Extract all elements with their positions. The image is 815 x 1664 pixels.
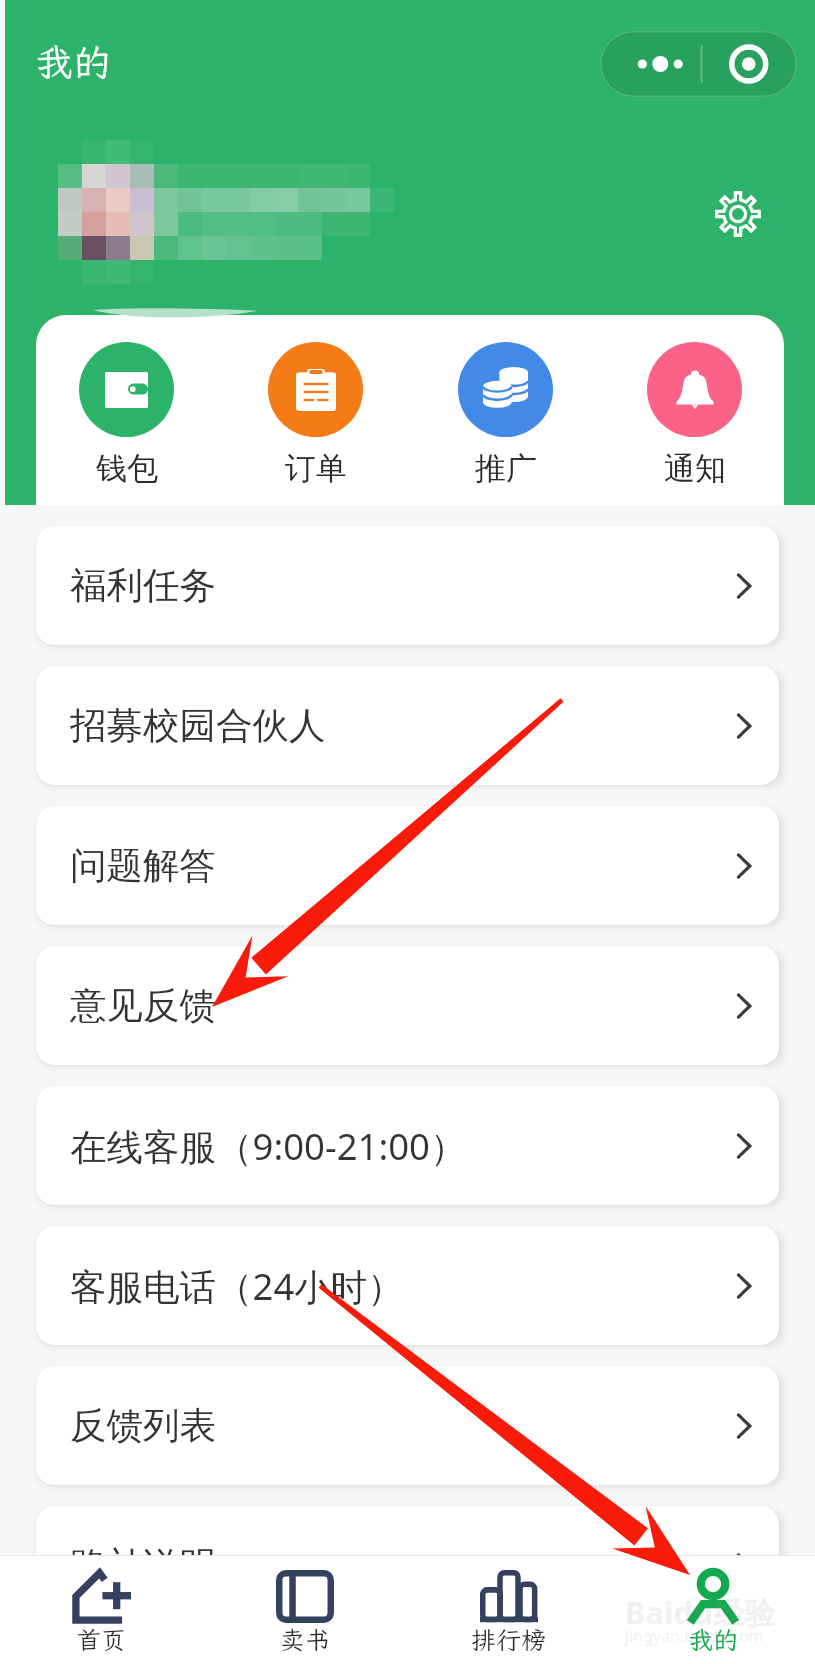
button[interactable]: 问题解答 [36, 806, 779, 925]
button[interactable]: 福利任务 [36, 526, 779, 645]
staticText: 订单 [285, 449, 347, 488]
staticText: 卖书 [280, 1623, 331, 1656]
button[interactable]: 通知 [647, 342, 742, 488]
button[interactable]: 在线客服（9:00-21:00） [36, 1086, 779, 1205]
staticText: 福利任务 [70, 563, 216, 609]
button[interactable]: 卖书 [203, 1556, 407, 1664]
button[interactable]: Mini program menu [600, 31, 797, 97]
button[interactable]: 订单 [268, 342, 363, 488]
staticText: 钱包 [96, 449, 158, 488]
button[interactable]: 推广 [458, 342, 553, 488]
staticText: 反馈列表 [70, 1403, 216, 1449]
staticText: 首页 [76, 1623, 127, 1656]
staticText: 通知 [664, 449, 726, 488]
staticText: 客服电话（24小时） [70, 1261, 404, 1311]
button[interactable]: 我的 [611, 1556, 815, 1664]
button[interactable]: 意见反馈 [36, 946, 779, 1065]
staticText: jingyan.baidu.com [625, 1625, 764, 1647]
staticText: 在线客服（9:00-21:00） [70, 1121, 467, 1171]
staticText: 推广 [475, 449, 537, 488]
button[interactable]: Settings [714, 190, 762, 238]
staticText: 路补说明 [70, 1543, 216, 1589]
staticText: 招募校园合伙人 [70, 703, 326, 749]
staticText: 我的 [35, 37, 112, 87]
staticText: Baidu经验 [625, 1591, 776, 1633]
button[interactable]: 反馈列表 [36, 1366, 779, 1485]
button[interactable]: 路补说明 [36, 1506, 779, 1625]
staticText: 我的 [688, 1623, 739, 1656]
staticText: 意见反馈 [70, 983, 216, 1029]
button[interactable]: 客服电话（24小时） [36, 1226, 779, 1345]
button[interactable]: 排行榜 [407, 1556, 611, 1664]
button[interactable]: 钱包 [79, 342, 174, 488]
button[interactable]: 首页 [0, 1556, 203, 1664]
button[interactable]: 招募校园合伙人 [36, 666, 779, 785]
staticText: 排行榜 [471, 1623, 547, 1656]
staticText: 问题解答 [70, 843, 216, 889]
